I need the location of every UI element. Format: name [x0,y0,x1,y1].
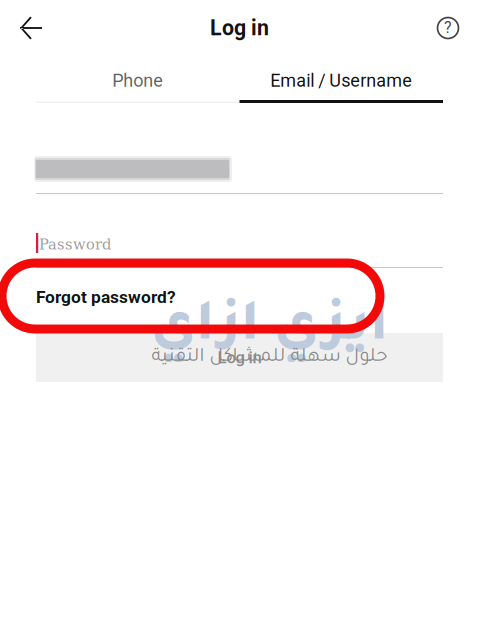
button[interactable]: Email / Username [239,56,443,103]
staticText: Log in [217,348,261,367]
staticText: Forgot password? [36,287,176,307]
button[interactable]: Back [7,4,55,52]
staticText: حلول سهلة للمشاكل التقنية [151,348,387,368]
button[interactable]: Phone [36,56,239,103]
staticText: ايزي ازاي [150,301,388,359]
button[interactable] [36,333,443,382]
staticText: Log in [210,15,269,40]
staticText: Password [39,236,111,253]
button[interactable]: Forgot password? [36,270,443,324]
staticText: Phone [112,70,163,91]
staticText: Email / Username [270,70,412,91]
staticText: ? [444,18,452,37]
button[interactable]: Help [424,4,472,52]
